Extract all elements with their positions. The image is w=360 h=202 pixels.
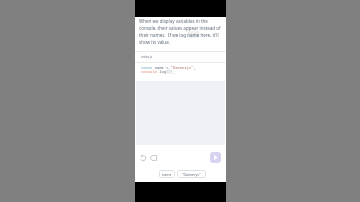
staticText: When we display variables in the console…	[139, 18, 225, 45]
button[interactable]	[140, 155, 150, 165]
staticText: console.log( );	[141, 69, 176, 74]
staticText: "Daenerys"	[182, 172, 201, 177]
button[interactable]	[150, 155, 160, 165]
button[interactable]: name	[159, 170, 175, 178]
staticText: name	[162, 172, 172, 177]
button[interactable]: "Daenerys"	[177, 170, 206, 178]
staticText: const name = "Daenerys";	[141, 65, 196, 70]
staticText: index.js	[141, 55, 153, 59]
button[interactable]	[210, 152, 221, 163]
